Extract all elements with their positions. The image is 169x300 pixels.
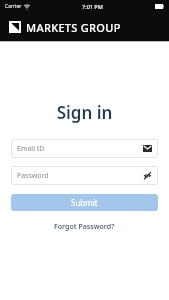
button[interactable]: Submit <box>11 194 158 211</box>
staticText: Sign in <box>11 101 158 124</box>
button[interactable]: Forgot Password? <box>50 220 119 234</box>
staticText: MARKETS GROUP <box>26 20 121 35</box>
other: Markets Group logo <box>9 21 21 33</box>
button[interactable]: Email ID <box>11 139 158 158</box>
button[interactable]: Password <box>11 166 158 185</box>
staticText: Password <box>17 171 49 181</box>
other: Show password <box>143 171 152 180</box>
other: Email <box>143 144 152 153</box>
staticText: Forgot Password? <box>54 222 115 232</box>
staticText: Submit <box>71 197 98 208</box>
staticText: Carrier <box>5 3 22 10</box>
staticText: Email ID <box>17 144 45 154</box>
staticText: 7:01 PM <box>82 3 103 10</box>
